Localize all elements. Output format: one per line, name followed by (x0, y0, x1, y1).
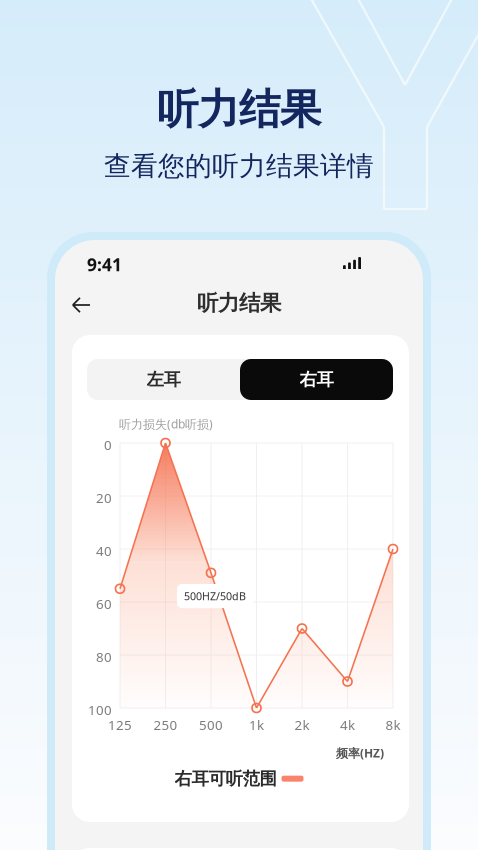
staticText: 右耳可听范围 (174, 768, 276, 789)
staticText: 右耳 (299, 369, 333, 390)
staticText: 0 (104, 436, 112, 454)
staticText: 20 (96, 489, 112, 507)
staticText: 80 (96, 648, 112, 666)
staticText: 听力损失(db听损) (119, 416, 213, 432)
staticText: 听力结果 (197, 290, 281, 316)
button[interactable]: 右耳 (240, 359, 393, 400)
staticText: 500 (199, 716, 223, 734)
staticText: 8k (385, 716, 400, 734)
staticText: 听力结果 (157, 84, 321, 135)
staticText: 9:41 (87, 253, 122, 276)
staticText: 125 (108, 716, 132, 734)
staticText: 频率(HZ) (336, 745, 384, 761)
staticText: 1k (249, 716, 264, 734)
staticText: 查看您的听力结果详情 (104, 150, 374, 183)
staticText: 40 (96, 542, 112, 560)
staticText: 左耳 (146, 369, 180, 390)
staticText: 60 (96, 595, 112, 613)
button[interactable]: 左耳 (87, 359, 240, 400)
button[interactable]: Back (62, 287, 100, 323)
staticText: 250 (153, 716, 177, 734)
staticText: 4k (340, 716, 355, 734)
staticText: 100 (88, 701, 112, 719)
staticText: 2k (294, 716, 309, 734)
staticText: 500HZ/50dB (184, 589, 246, 603)
